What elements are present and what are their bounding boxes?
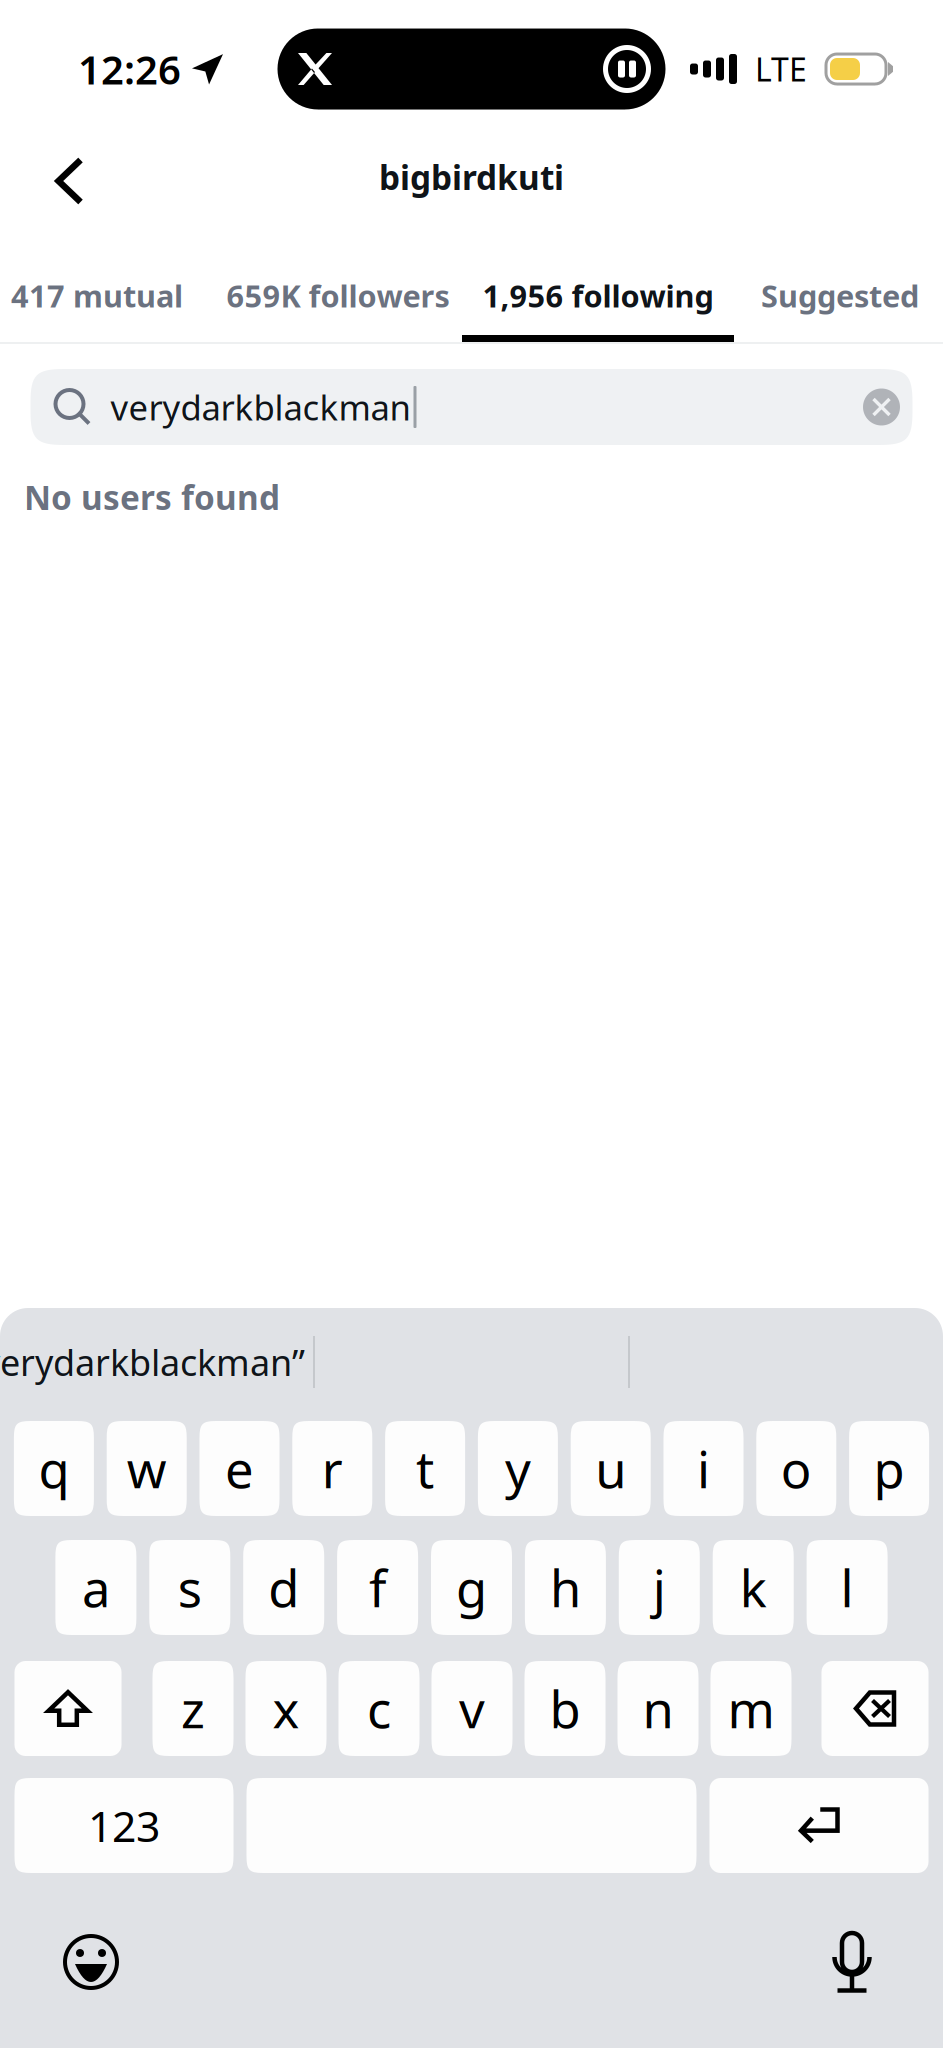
staticText: y [505, 1435, 531, 1502]
button[interactable]: h [525, 1540, 606, 1635]
staticText: x [272, 1675, 299, 1742]
staticText: verydarkblackman” [0, 1338, 305, 1386]
button[interactable]: Back [0, 138, 138, 232]
button[interactable]: z [152, 1661, 233, 1756]
staticText: c [367, 1675, 391, 1742]
button[interactable]: i [663, 1421, 743, 1516]
staticText: Suggested [761, 275, 919, 316]
button[interactable]: Delete [821, 1661, 928, 1756]
staticText: b [549, 1675, 580, 1742]
button[interactable]: q [14, 1421, 94, 1516]
staticText: LTE [755, 48, 807, 90]
staticText: 12:26 [78, 42, 181, 95]
button[interactable]: t [385, 1421, 465, 1516]
staticText: d [268, 1554, 299, 1621]
button[interactable]: Suggested [734, 232, 943, 342]
button[interactable]: x [245, 1661, 326, 1756]
staticText: j [653, 1554, 666, 1621]
button[interactable]: f [337, 1540, 418, 1635]
button[interactable]: 123 [14, 1778, 233, 1873]
staticText: 659K followers [226, 275, 449, 316]
button[interactable]: n [617, 1661, 698, 1756]
staticText: k [740, 1554, 767, 1621]
staticText: n [642, 1675, 673, 1742]
button[interactable]: Shift [14, 1661, 121, 1756]
staticText: p [874, 1435, 905, 1502]
staticText: m [727, 1675, 774, 1742]
staticText: h [550, 1554, 581, 1621]
staticText: 123 [88, 1797, 160, 1854]
button[interactable]: v [431, 1661, 512, 1756]
staticText: o [781, 1435, 812, 1502]
button[interactable]: m [710, 1661, 791, 1756]
button[interactable]: c [338, 1661, 419, 1756]
staticText: 417 mutual [11, 275, 183, 316]
button[interactable]: o [756, 1421, 836, 1516]
staticText: 1,956 following [482, 275, 713, 316]
button[interactable]: Dictation [806, 1925, 898, 1999]
button[interactable]: s [149, 1540, 230, 1635]
button[interactable]: j [619, 1540, 700, 1635]
button[interactable]: b [524, 1661, 605, 1756]
staticText: l [841, 1554, 854, 1621]
button[interactable]: u [571, 1421, 651, 1516]
staticText: g [456, 1554, 487, 1621]
button[interactable]: e [199, 1421, 279, 1516]
button[interactable]: p [849, 1421, 929, 1516]
staticText: e [225, 1435, 254, 1502]
staticText: u [595, 1435, 626, 1502]
button[interactable]: k [713, 1540, 794, 1635]
staticText: s [178, 1554, 202, 1621]
staticText: f [369, 1554, 386, 1621]
staticText: v [459, 1675, 485, 1742]
button[interactable]: w [107, 1421, 187, 1516]
button[interactable]: 1,956 following [462, 232, 734, 342]
button[interactable]: a [55, 1540, 136, 1635]
staticText: r [322, 1435, 343, 1502]
button[interactable]: Clear search [859, 385, 903, 429]
button[interactable]: Return [709, 1778, 928, 1873]
staticText: verydarkblackman [110, 384, 410, 430]
button[interactable]: y [478, 1421, 558, 1516]
button[interactable]: 417 mutual [0, 232, 214, 342]
button[interactable]: g [431, 1540, 512, 1635]
staticText: bigbirdkuti [379, 155, 564, 199]
button[interactable]: r [292, 1421, 372, 1516]
button[interactable]: d [243, 1540, 324, 1635]
staticText: i [697, 1435, 710, 1502]
staticText: No users found [24, 475, 280, 519]
button[interactable]: 659K followers [214, 232, 462, 342]
button[interactable]: Emoji [45, 1925, 137, 1999]
staticText: a [82, 1554, 110, 1621]
staticText: z [181, 1675, 205, 1742]
staticText: t [416, 1435, 434, 1502]
staticText: w [127, 1435, 167, 1502]
button[interactable]: l [807, 1540, 888, 1635]
staticText: q [38, 1435, 69, 1502]
